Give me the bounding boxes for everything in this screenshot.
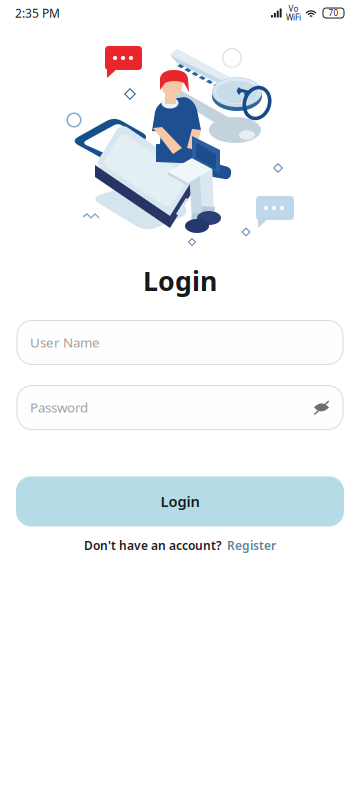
- button[interactable]: Login: [16, 476, 344, 526]
- staticText: Login: [160, 492, 199, 511]
- staticText: Login: [143, 263, 217, 298]
- staticText: 2:35 PM: [15, 5, 60, 21]
- staticText: WiFi: [286, 12, 301, 23]
- staticText: Password: [30, 399, 88, 416]
- staticText: User Name: [30, 334, 100, 351]
- staticText: Vo: [288, 3, 298, 14]
- staticText: 70: [328, 8, 338, 18]
- button[interactable]: Register: [227, 537, 276, 553]
- staticText: Register: [227, 537, 276, 553]
- staticText: Don't have an account?: [84, 537, 222, 553]
